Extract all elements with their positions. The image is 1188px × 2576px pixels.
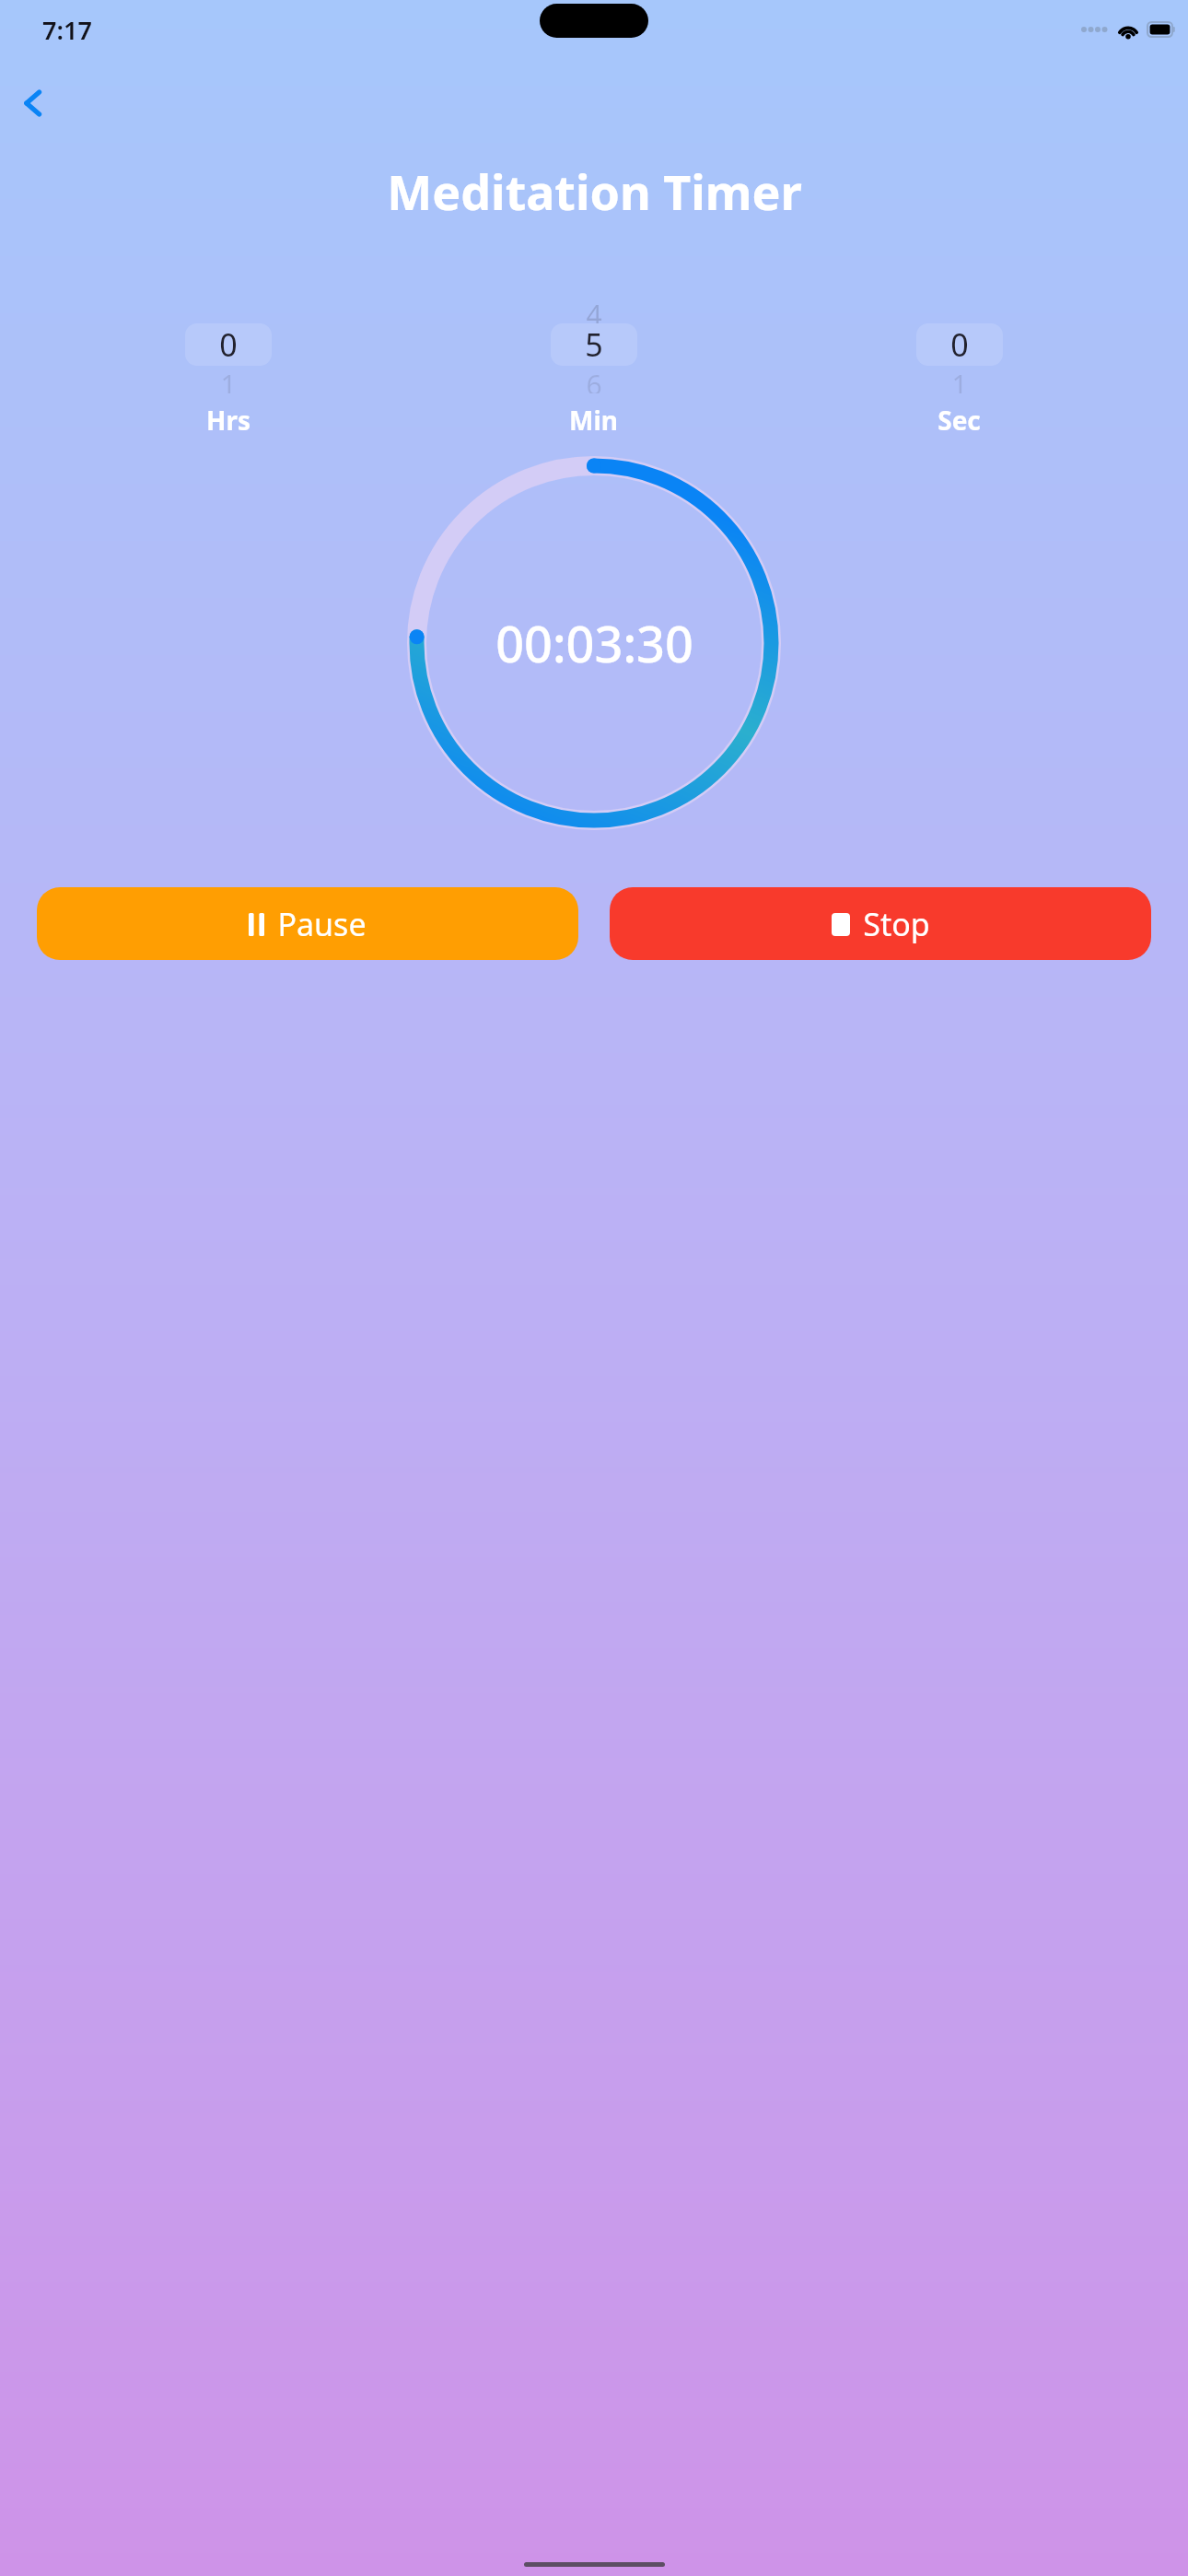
staticText: 0 (950, 323, 969, 366)
staticText: 0 (219, 323, 238, 366)
staticText: 6 (586, 366, 602, 393)
staticText: 4 (586, 296, 602, 323)
staticText: Pause (277, 903, 367, 945)
button[interactable]: Pause (37, 887, 578, 960)
staticText: 1 (220, 366, 237, 393)
button[interactable]: Back (7, 77, 59, 129)
button[interactable]: Stop (610, 887, 1151, 960)
staticText: 5 (585, 323, 603, 366)
staticText: Sec (938, 403, 981, 438)
staticText: 1 (951, 366, 968, 393)
button[interactable]: 4 (411, 296, 776, 438)
staticText: 00:03:30 (495, 609, 693, 677)
staticText: Stop (863, 903, 930, 945)
staticText: Meditation Timer (387, 158, 802, 224)
staticText: 7:17 (42, 13, 92, 47)
staticText: Min (569, 403, 618, 438)
button[interactable]: 0 (46, 296, 411, 438)
button[interactable]: 0 (776, 296, 1142, 438)
staticText: Hrs (206, 403, 250, 438)
